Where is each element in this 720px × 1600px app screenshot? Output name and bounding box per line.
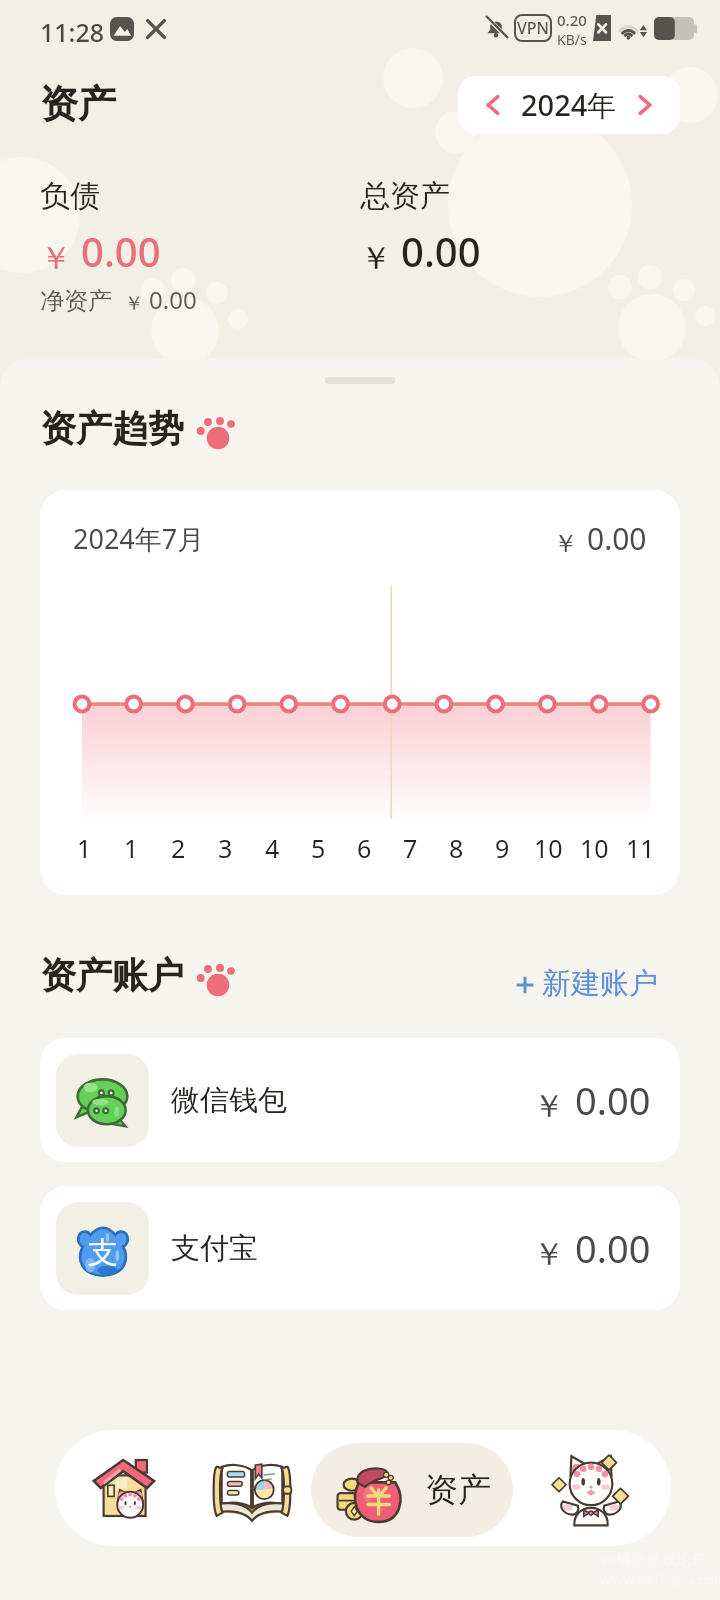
staticText: 0.00	[575, 1222, 651, 1274]
button[interactable]: 账本	[187, 1430, 317, 1546]
staticText: 负债	[40, 177, 100, 215]
staticText: 11	[626, 831, 655, 865]
button[interactable]: 2024年	[458, 76, 680, 134]
staticText: 净资产	[40, 286, 112, 316]
staticText: 0.00	[149, 283, 197, 316]
staticText: 7	[403, 831, 418, 865]
staticText: KB/s	[557, 30, 587, 46]
staticText: 资产	[425, 1469, 491, 1511]
staticText: 支	[88, 1234, 118, 1272]
staticText: 5	[311, 831, 326, 865]
staticText: ￥	[40, 238, 72, 278]
staticText: 2024年7月	[73, 520, 205, 557]
staticText: ￥	[533, 1234, 565, 1274]
staticText: ￥	[124, 291, 144, 316]
staticText: 1	[124, 831, 139, 865]
staticText: 2024年	[521, 85, 617, 125]
staticText: 3	[218, 831, 233, 865]
button[interactable]: 首页	[61, 1430, 191, 1546]
staticText: 4	[265, 831, 280, 865]
staticText: 1	[77, 831, 92, 865]
staticText: 2	[171, 831, 186, 865]
staticText: 资产趋势	[40, 406, 184, 451]
staticText: 6	[357, 831, 372, 865]
button[interactable]: 微信钱包	[40, 1038, 680, 1162]
staticText: 新建账户	[542, 965, 658, 1002]
staticText: 0.00	[575, 1074, 651, 1126]
staticText: 资产账户	[40, 953, 184, 998]
staticText: 0.00	[81, 224, 161, 278]
staticText: ￥	[533, 1086, 565, 1126]
button[interactable]: 资产	[311, 1443, 513, 1537]
staticText: 11:28	[40, 15, 105, 49]
staticText: 10	[580, 831, 609, 865]
button[interactable]: 新建账户	[514, 965, 658, 1002]
button[interactable]: 我的	[527, 1430, 655, 1546]
staticText: 0.00	[401, 224, 481, 278]
staticText: 支付宝	[171, 1230, 258, 1267]
staticText: 9	[495, 831, 510, 865]
staticText: VPN	[517, 17, 550, 39]
staticText: 8	[449, 831, 464, 865]
staticText: 0.20	[557, 10, 587, 30]
staticText: 0.00	[587, 518, 647, 559]
staticText: 资产	[40, 80, 116, 128]
staticText: 10	[534, 831, 563, 865]
staticText: ￥	[360, 238, 392, 278]
staticText: ￥	[553, 528, 578, 559]
staticText: 总资产	[360, 177, 450, 215]
button[interactable]: 支	[40, 1186, 680, 1310]
button[interactable]: 2024年7月	[40, 490, 680, 895]
staticText: 微信钱包	[171, 1082, 287, 1119]
